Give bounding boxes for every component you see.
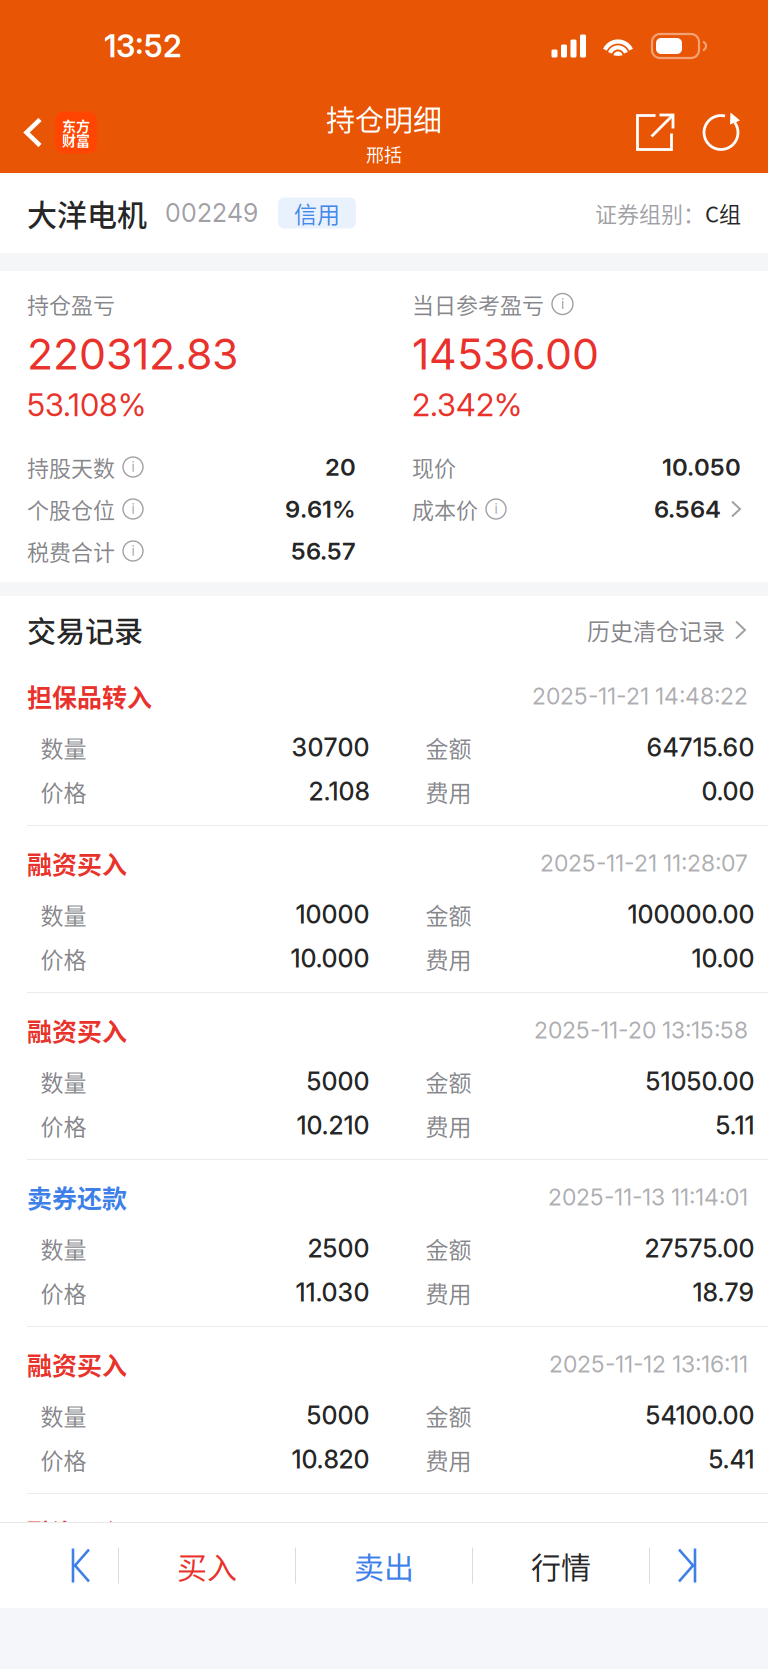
staticText: 买入 [177, 1544, 237, 1587]
staticText: 历史清仓记录 [587, 613, 725, 647]
staticText: 10.820 [291, 1444, 369, 1475]
staticText: 费用 [425, 775, 471, 808]
staticText: 100000.00 [627, 899, 754, 930]
staticText: 2025-11-20 13:15:58 [534, 1016, 748, 1044]
staticText: 融资买入 [27, 1012, 127, 1048]
staticText: 53.108% [27, 386, 146, 424]
staticText: 5000 [306, 1400, 369, 1431]
staticText: 费用 [425, 1276, 471, 1309]
staticText: 10000 [295, 899, 369, 930]
staticText: 现价 [412, 451, 456, 483]
staticText: 14536.00 [412, 328, 599, 380]
staticText: C组 [705, 197, 741, 229]
staticText: 金额 [425, 1399, 471, 1432]
staticText: i [131, 459, 134, 475]
staticText: 数量 [40, 898, 86, 931]
staticText: 11.030 [295, 1277, 369, 1308]
staticText: 卖出 [354, 1544, 414, 1587]
staticText: i [494, 501, 497, 517]
staticText: 2.108 [308, 776, 369, 807]
staticText: 费用 [425, 1443, 471, 1476]
button[interactable]: 返回 东方财富 [0, 98, 109, 166]
staticText: 融资买入 [27, 1346, 127, 1382]
staticText: 邢括 [366, 141, 402, 167]
staticText: 数量 [40, 1065, 86, 1098]
staticText: 当日参考盈亏 [412, 288, 544, 320]
staticText: 个股仓位 [27, 493, 115, 525]
staticText: 10.000 [290, 943, 369, 974]
staticText: 金额 [425, 898, 471, 931]
button[interactable]: 下一个 [650, 1523, 722, 1608]
staticText: 财富 [62, 129, 90, 150]
staticText: 东方 [62, 115, 90, 135]
staticText: 大洋电机 [27, 191, 147, 235]
staticText: 卖券还款 [27, 1179, 127, 1215]
staticText: 持仓盈亏 [27, 288, 115, 320]
button[interactable]: 上一个 [46, 1523, 118, 1608]
staticText: 0.00 [701, 776, 754, 807]
staticText: 56.57 [291, 536, 356, 565]
button[interactable]: 历史清仓记录 [577, 607, 746, 653]
staticText: 10.00 [691, 943, 754, 974]
staticText: 持仓明细 [326, 98, 442, 140]
staticText: i [561, 296, 564, 312]
staticText: i [131, 501, 134, 517]
staticText: 5.11 [715, 1110, 754, 1141]
staticText: 数量 [40, 1399, 86, 1432]
staticText: 9.61% [285, 494, 356, 523]
button[interactable]: 行情 [473, 1523, 649, 1608]
staticText: 税费合计 [27, 535, 115, 567]
staticText: i [131, 543, 134, 559]
staticText: 13:52 [104, 27, 182, 65]
staticText: 2025-11-21 11:28:07 [540, 849, 748, 877]
staticText: 002249 [165, 198, 258, 228]
staticText: 2025-11-13 11:14:01 [548, 1183, 748, 1211]
staticText: 成本价 [412, 493, 478, 525]
button[interactable]: 刷新 [688, 98, 754, 166]
staticText: 54100.00 [645, 1400, 754, 1431]
staticText: 金额 [425, 731, 471, 764]
staticText: 价格 [40, 942, 86, 975]
staticText: 64715.60 [646, 732, 754, 763]
staticText: 担保品转入 [27, 678, 152, 714]
staticText: 信用 [294, 196, 340, 230]
staticText: 费用 [425, 942, 471, 975]
staticText: 10.210 [296, 1110, 369, 1141]
staticText: 价格 [40, 1443, 86, 1476]
staticText: 20 [325, 452, 356, 481]
staticText: 证券组别： [595, 197, 705, 229]
staticText: 金额 [425, 1232, 471, 1265]
staticText: 行情 [531, 1544, 591, 1587]
button[interactable]: 分享 [622, 98, 688, 166]
staticText: 价格 [40, 1109, 86, 1142]
staticText: 费用 [425, 1109, 471, 1142]
staticText: 51050.00 [645, 1066, 754, 1097]
staticText: 2025-11-21 14:48:22 [532, 682, 748, 710]
staticText: 5000 [306, 1066, 369, 1097]
button[interactable]: 买入 [119, 1523, 295, 1608]
button[interactable]: 卖出 [296, 1523, 472, 1608]
staticText: 融资买入 [27, 845, 127, 881]
staticText: 价格 [40, 775, 86, 808]
staticText: 27575.00 [644, 1233, 754, 1264]
staticText: 2025-11-12 13:16:11 [549, 1350, 748, 1378]
staticText: 220312.83 [27, 328, 238, 380]
staticText: 价格 [40, 1276, 86, 1309]
staticText: 交易记录 [27, 609, 143, 651]
staticText: 数量 [40, 731, 86, 764]
staticText: 30700 [291, 732, 369, 763]
staticText: 持股天数 [27, 451, 115, 483]
staticText: 融资买入 [27, 1513, 127, 1549]
staticText: 18.79 [692, 1277, 754, 1308]
staticText: 数量 [40, 1232, 86, 1265]
staticText: 2500 [307, 1233, 369, 1264]
staticText: 金额 [425, 1065, 471, 1098]
staticText: 6.564 [654, 494, 721, 523]
staticText: 2.342% [412, 386, 522, 424]
staticText: 5.41 [708, 1444, 754, 1475]
staticText: 10.050 [662, 452, 741, 481]
